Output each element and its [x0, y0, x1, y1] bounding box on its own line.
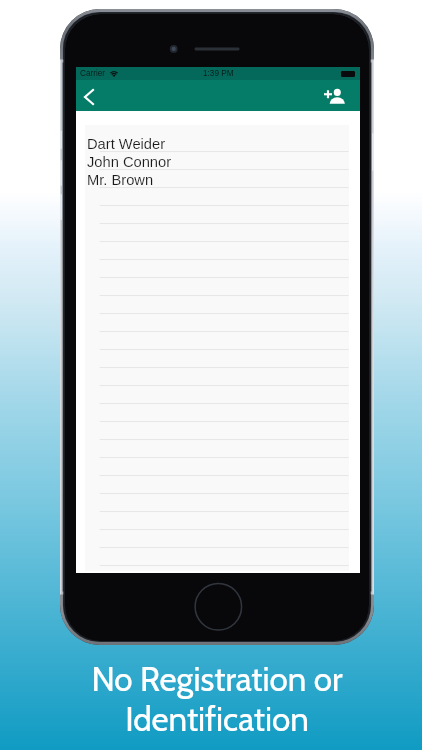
- staticText: Dart Weider: [87, 136, 166, 152]
- staticText: John Connor: [87, 154, 172, 170]
- button[interactable]: Dart Weider: [85, 125, 349, 151]
- staticText: Mr. Brown: [87, 172, 154, 188]
- button[interactable]: Add contact: [319, 80, 350, 111]
- staticText: 1:39 PM: [203, 69, 234, 78]
- button[interactable]: Mr. Brown: [85, 169, 349, 187]
- staticText: Identification: [125, 699, 309, 739]
- button[interactable]: John Connor: [85, 151, 349, 169]
- staticText: No Registration or: [91, 659, 343, 699]
- staticText: Carrier: [80, 69, 106, 78]
- button[interactable]: Back: [76, 80, 102, 111]
